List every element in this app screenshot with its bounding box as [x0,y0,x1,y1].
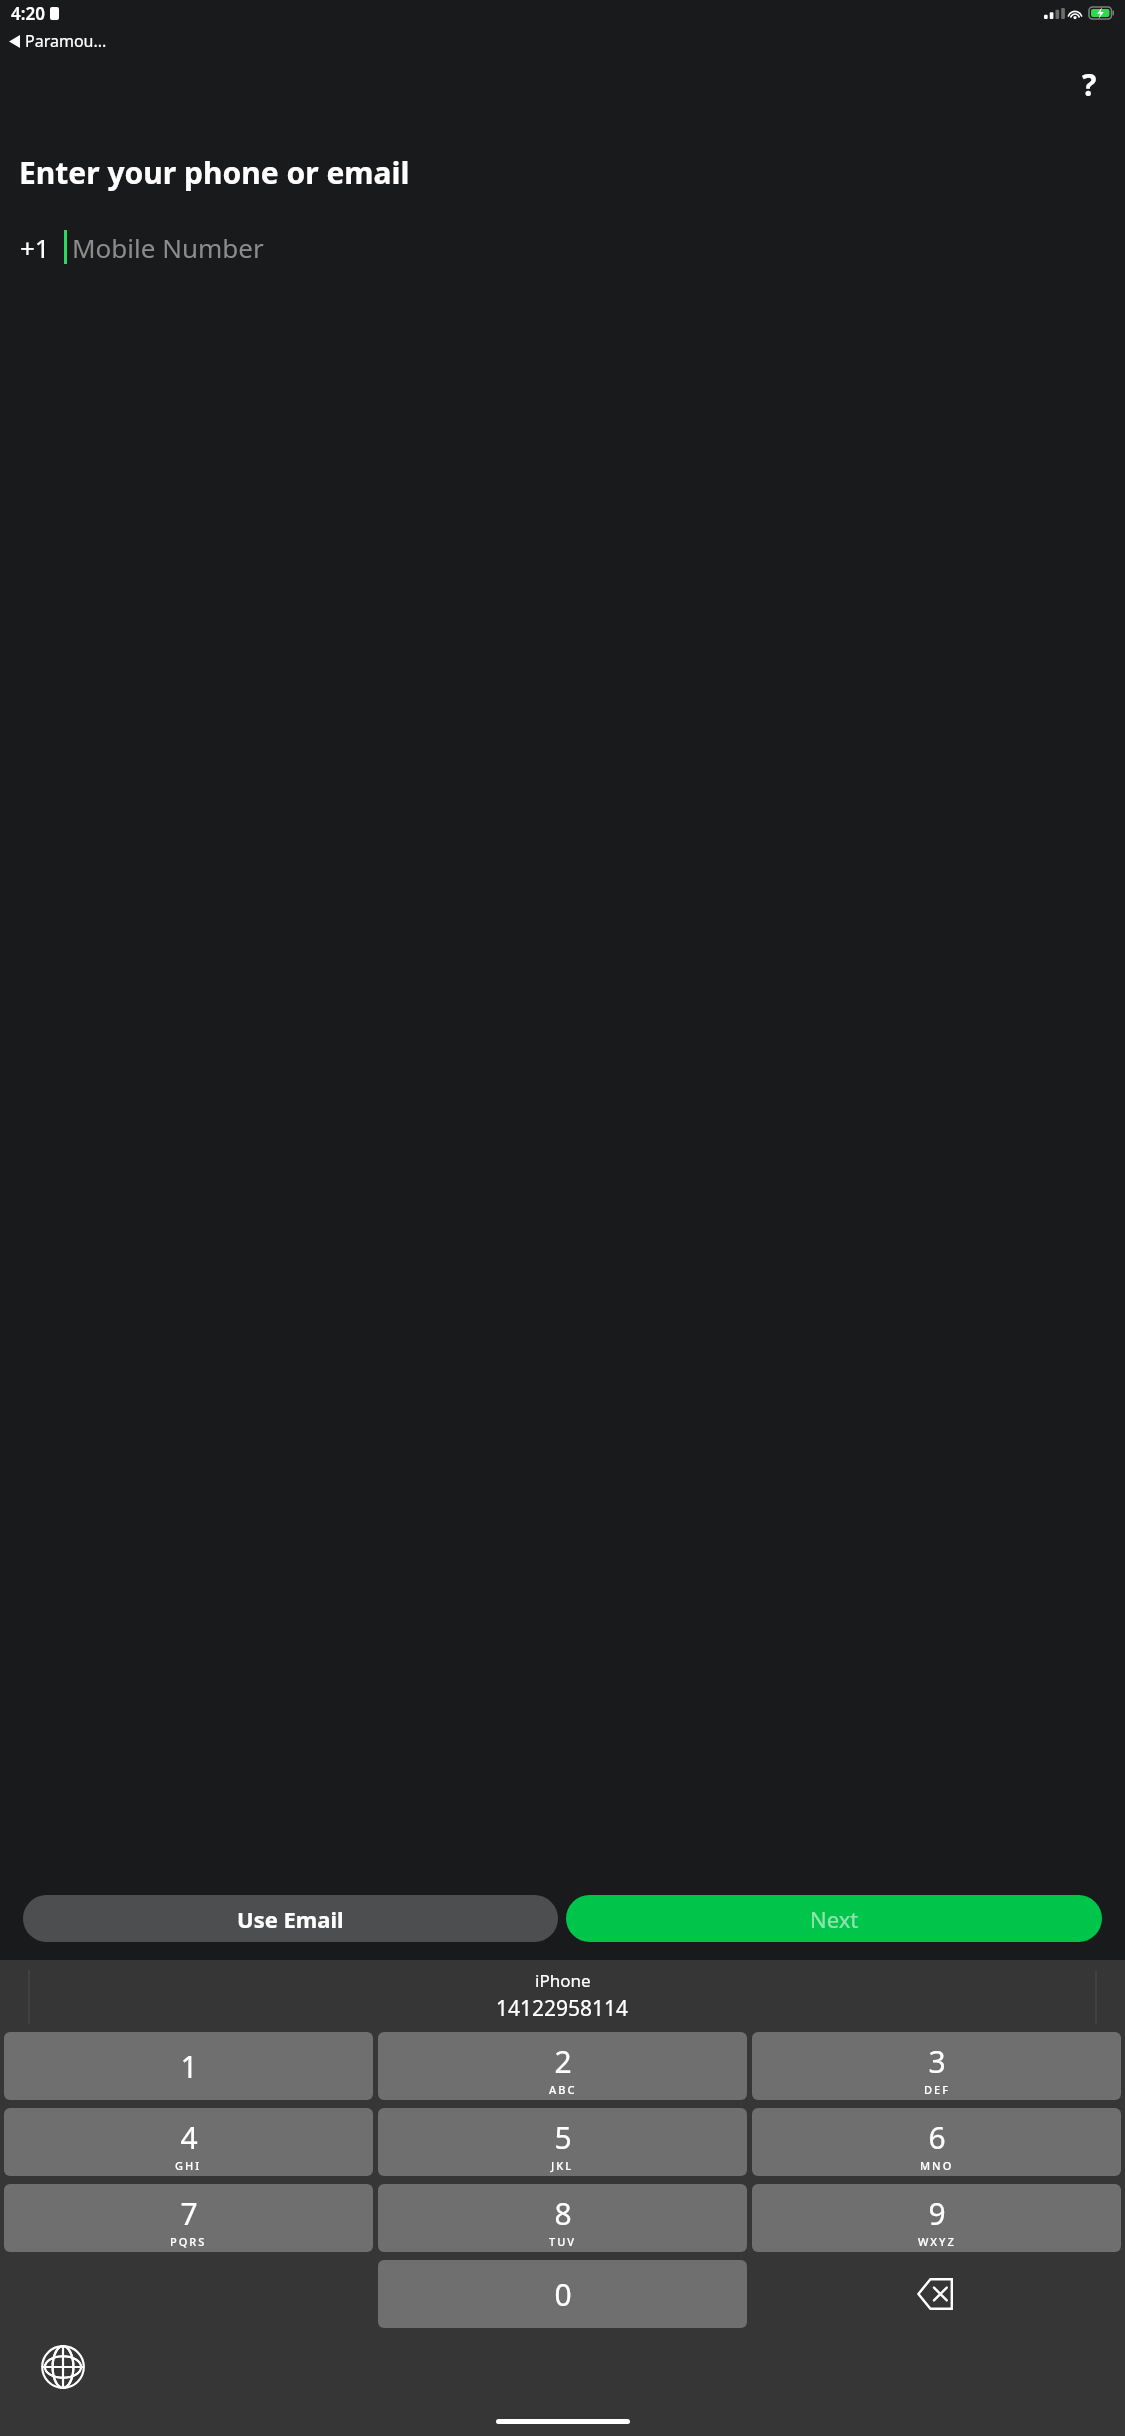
staticText: 3 [928,2041,946,2082]
staticText: 6 [928,2117,946,2158]
staticText: ABC [549,2082,577,2097]
staticText: WXYZ [918,2234,956,2249]
staticText: Enter your phone or email [19,152,410,193]
staticText: Next [810,1904,859,1934]
button[interactable]: 7 [4,2184,373,2252]
button[interactable]: 6 [752,2108,1121,2176]
staticText: 0 [554,2274,572,2315]
staticText: MNO [920,2158,954,2173]
button[interactable]: 0 [378,2260,747,2328]
staticText: Mobile Number [72,230,264,265]
staticText: JKL [551,2158,574,2173]
staticText: 2 [554,2041,572,2082]
staticText: iPhone [535,1969,591,1992]
staticText: 4 [180,2117,198,2158]
staticText: 5 [554,2117,572,2158]
staticText: 4:20 [11,2,45,25]
staticText: 7 [180,2193,198,2234]
button[interactable]: 3 [752,2032,1121,2100]
staticText: 8 [554,2193,572,2234]
staticText: 1 [180,2046,198,2087]
button[interactable]: Use Email [23,1895,558,1942]
staticText: DEF [924,2082,950,2097]
button[interactable]: Help [1065,60,1113,108]
button[interactable]: +1 [20,221,1125,273]
button[interactable]: 9 [752,2184,1121,2252]
staticText: Paramou... [25,30,107,52]
staticText: Use Email [237,1904,344,1934]
button[interactable]: 1 [4,2032,373,2100]
staticText: +1 [20,230,50,265]
button[interactable]: Next [566,1895,1102,1942]
button[interactable]: 8 [378,2184,747,2252]
button[interactable]: Change keyboard language [40,2344,86,2390]
staticText: ? [1082,64,1097,105]
button[interactable]: 2 [378,2032,747,2100]
button[interactable]: 5 [378,2108,747,2176]
staticText: TUV [549,2234,577,2249]
staticText: PQRS [170,2234,207,2249]
button[interactable]: Delete [752,2260,1121,2328]
staticText: 9 [928,2193,946,2234]
staticText: 14122958114 [496,1994,629,2023]
staticText: GHI [175,2158,202,2173]
button[interactable]: 4 [4,2108,373,2176]
button[interactable]: Back to Paramount [9,26,1125,56]
